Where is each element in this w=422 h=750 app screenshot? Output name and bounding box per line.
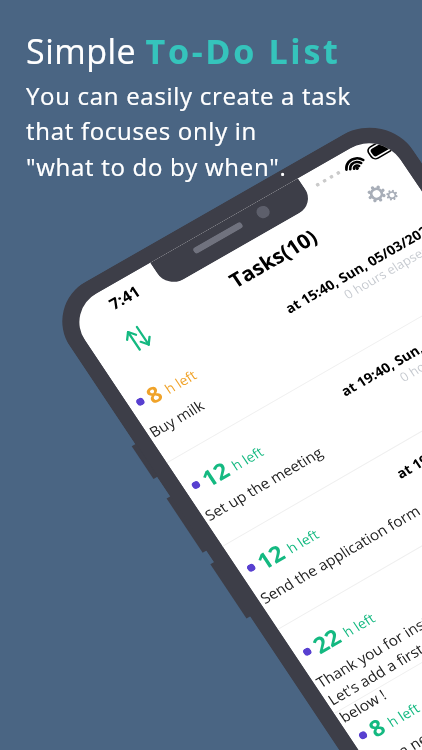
staticText: 7:41 (105, 280, 145, 314)
staticText: 12 (195, 454, 235, 493)
staticText: Buy milk (145, 395, 208, 441)
staticText: 8 (362, 710, 391, 743)
staticText: Send the application form (256, 501, 422, 608)
button[interactable]: 8 (114, 203, 422, 466)
staticText: 8 (139, 377, 168, 410)
staticText: Tasks(10) (224, 223, 323, 294)
button[interactable]: Sort (119, 321, 157, 356)
staticText: at 15:40, Sun, 05/03/2023 (281, 217, 422, 317)
staticText: h left (339, 608, 379, 641)
staticText: 0 hours elapsed (340, 240, 422, 303)
staticText: You can easily create a task that focuse… (26, 79, 351, 183)
button[interactable]: 12 (170, 285, 422, 550)
staticText: Thank you for installing! Let's add a fi… (312, 591, 422, 727)
staticText: h left (228, 442, 267, 474)
staticText: 22 (306, 620, 347, 660)
staticText: Set up the meeting (201, 442, 327, 525)
staticText: 12 (250, 537, 291, 576)
button[interactable]: 8 (337, 533, 422, 750)
staticText: h left (283, 524, 323, 557)
staticText: at 19:40, Sun, 05/03/2023 (337, 299, 422, 400)
staticText: h left (383, 698, 422, 731)
button[interactable]: 22 (281, 450, 422, 717)
staticText: h left (161, 365, 200, 398)
staticText: Buy a new phone (368, 698, 422, 750)
staticText: at 19:40, Sun, 05/03/2023 (392, 381, 422, 482)
button[interactable]: 12 (225, 367, 422, 633)
button[interactable]: Settings (358, 171, 409, 217)
staticText: Simple To-Do List (26, 28, 341, 74)
staticText: 0 hours elapsed (396, 323, 422, 386)
